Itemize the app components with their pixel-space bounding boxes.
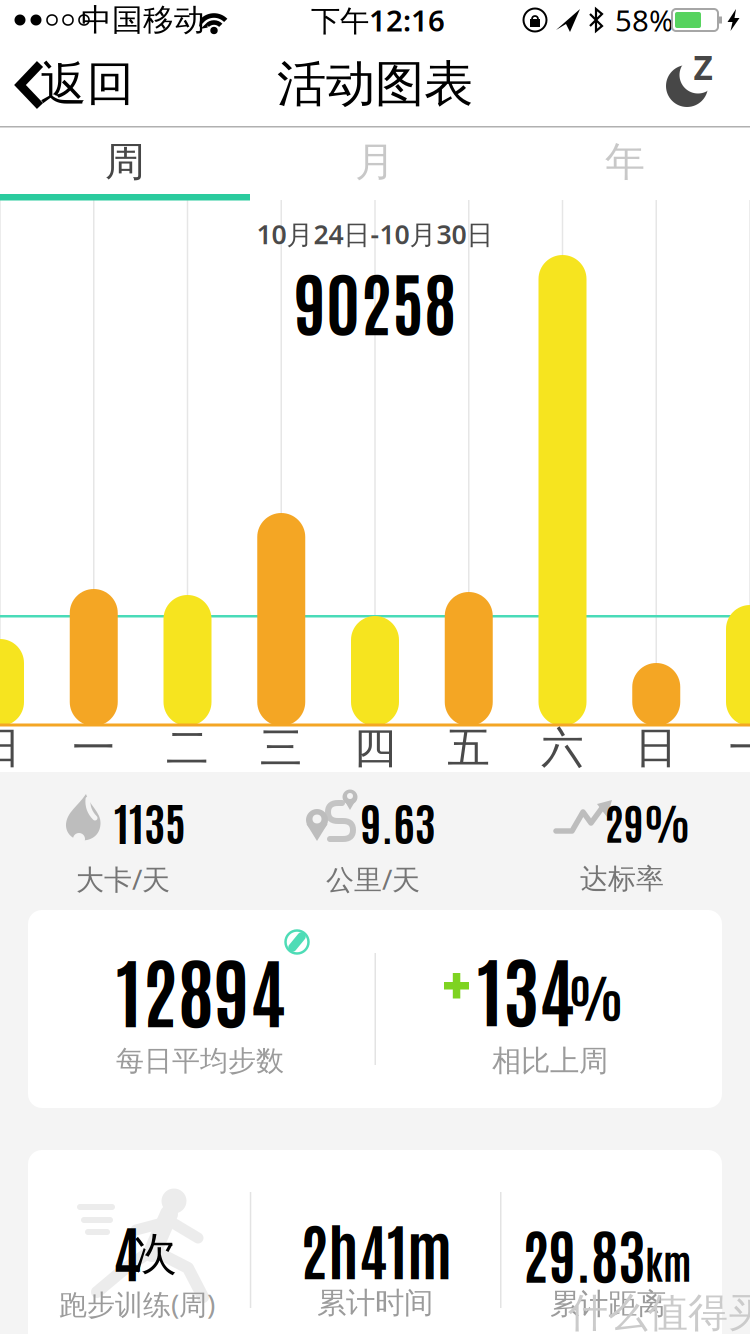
staticText: 相比上周 <box>492 1043 608 1079</box>
staticText: 中国移动 <box>81 1 205 39</box>
staticText: 一 <box>728 722 750 774</box>
staticText: 58% <box>615 0 673 39</box>
staticText: 五 <box>447 722 490 774</box>
button[interactable]: 周 <box>0 129 250 195</box>
button[interactable]: 返回 <box>14 49 126 121</box>
staticText: 10月24日-10月30日 <box>256 216 493 252</box>
staticText: 下午12:16 <box>311 0 445 39</box>
staticText: 达标率 <box>580 862 664 896</box>
staticText: 2h41m <box>300 1208 452 1288</box>
staticText: 9.63 <box>360 792 435 850</box>
staticText: 4 <box>113 1210 141 1290</box>
staticText: 年 <box>605 137 645 186</box>
staticText: 周 <box>105 137 145 186</box>
staticText: % <box>568 962 623 1028</box>
staticText: 29.83 <box>522 1215 646 1291</box>
staticText: 返回 <box>40 55 134 113</box>
staticText: 累计时间 <box>317 1285 433 1321</box>
button[interactable]: 月 <box>250 129 500 195</box>
staticText: 日 <box>635 722 678 774</box>
staticText: 公里/天 <box>326 860 420 898</box>
button[interactable]: 年 <box>500 129 750 195</box>
staticText: 12894 <box>116 938 286 1038</box>
staticText: 三 <box>260 722 303 774</box>
staticText: km <box>645 1237 691 1287</box>
staticText: 跑步训练(周) <box>59 1285 215 1323</box>
staticText: 1135 <box>114 792 186 850</box>
staticText: 29% <box>604 793 690 849</box>
staticText: 日 <box>0 722 21 774</box>
staticText: 134 <box>477 937 575 1037</box>
staticText: 月 <box>355 137 395 186</box>
staticText: 累计距离 <box>550 1286 666 1322</box>
staticText: 每日平均步数 <box>116 1044 284 1078</box>
staticText: 二 <box>166 722 209 774</box>
staticText: 四 <box>353 722 396 774</box>
staticText: 90258 <box>294 255 456 345</box>
staticText: 什么值得买 <box>568 1288 750 1334</box>
staticText: 次 <box>133 1227 177 1281</box>
staticText: 大卡/天 <box>76 860 170 898</box>
staticText: 六 <box>541 722 584 774</box>
staticText: 活动图表 <box>277 54 473 114</box>
staticText: 一 <box>72 722 115 774</box>
staticText: Z <box>693 45 712 89</box>
button[interactable]: Z <box>657 52 721 116</box>
